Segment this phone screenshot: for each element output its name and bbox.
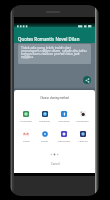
- staticText: Lainnya: [78, 139, 88, 142]
- button[interactable]: Whatsapp: [17, 111, 35, 122]
- staticText: Whatsapp: [20, 119, 32, 122]
- staticText: Choose sharing method: [14, 96, 95, 99]
- button[interactable]: Messenger: [54, 131, 73, 142]
- button[interactable]: Tidak ada yang lebih indah dari menatapm…: [18, 44, 91, 64]
- button[interactable]: Share: [83, 76, 91, 84]
- staticText: Facebook: [58, 119, 70, 122]
- button[interactable]: Email: [17, 131, 35, 142]
- staticText: Quotes Romantis Novel Dilan: [18, 36, 80, 42]
- staticText: Messenger: [57, 139, 71, 142]
- button[interactable]: Cancel: [43, 160, 67, 167]
- staticText: Email: [23, 139, 30, 142]
- button[interactable]: Lainnya: [73, 131, 92, 142]
- button[interactable]: Facebook: [54, 111, 73, 122]
- staticText: - Dilan: [21, 56, 30, 60]
- staticText: Instagram: [76, 119, 89, 122]
- button[interactable]: Telegram: [35, 111, 54, 122]
- button[interactable]: Instagram: [73, 111, 92, 122]
- staticText: Skype: [41, 139, 48, 142]
- button[interactable]: Skype: [35, 131, 54, 142]
- staticText: Cancel: [51, 162, 60, 166]
- staticText: Telegram: [39, 119, 50, 122]
- staticText: Tidak ada yang lebih indah dari menatapm…: [21, 45, 89, 59]
